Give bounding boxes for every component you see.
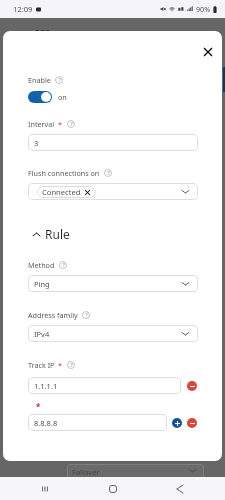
staticText: ? [85,311,88,319]
staticText: 3 [34,138,39,148]
button[interactable]: Ping [28,275,198,292]
staticText: Connected [42,187,81,197]
staticText: * [58,360,63,370]
staticText: Ping [34,279,50,289]
staticText: Address family [28,310,78,320]
button[interactable]: Back [171,480,189,498]
button[interactable]: 3 [28,134,198,151]
button[interactable]: IPv4 [28,325,198,342]
staticText: * [36,401,41,412]
button[interactable]: Enable toggle [28,91,52,103]
staticText: 1.1.1.1 [34,381,58,391]
staticText: on [58,92,67,102]
button[interactable]: Close [200,44,216,60]
staticText: Interval [28,119,55,129]
button[interactable]: 8.8.8.8 [28,414,167,431]
staticText: Flush connections on [28,168,100,178]
button[interactable]: Remove [187,381,197,391]
staticText: * [58,119,63,129]
staticText: ? [107,169,110,177]
staticText: Method [28,260,55,270]
button[interactable]: Remove [187,418,197,428]
staticText: 90% [196,4,211,14]
staticText: Failover [72,467,100,477]
staticText: 8.8.8.8 [34,418,58,428]
button[interactable]: Recents [36,480,54,498]
staticText: Rule [45,226,70,242]
staticText: IPv4 [34,329,50,339]
button[interactable]: 1.1.1.1 [28,377,181,394]
button[interactable]: Home [104,480,122,498]
staticText: ? [70,120,73,128]
staticText: Track IP [28,360,55,370]
button[interactable]: Add [172,418,182,428]
button[interactable]: Rule [28,226,198,242]
staticText: Enable [28,75,51,85]
staticText: ? [70,361,73,369]
staticText: ? [58,76,61,84]
staticText: ? [62,261,65,269]
button[interactable]: Connected [28,183,198,200]
staticText: 12:09 [13,4,33,14]
